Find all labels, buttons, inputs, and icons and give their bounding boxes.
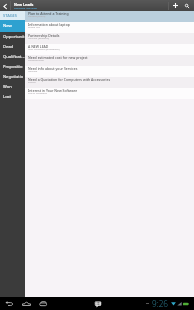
button[interactable]: Partnership Details bbox=[25, 33, 194, 44]
staticText: Need estimated cost for new project bbox=[28, 55, 88, 60]
staticText: Agrolait (Belgium) bbox=[28, 36, 50, 39]
staticText: Lost bbox=[3, 94, 12, 100]
staticText: Won bbox=[3, 84, 12, 90]
staticText: Information about laptop bbox=[28, 22, 70, 27]
button[interactable]: Add bbox=[169, 0, 181, 11]
staticText: The IT Company bbox=[28, 91, 48, 94]
staticText: Displaying New leads bbox=[14, 7, 37, 10]
staticText: Plan to Attend a Training bbox=[28, 11, 69, 16]
button[interactable]: Lost bbox=[0, 92, 25, 102]
button[interactable]: Dead bbox=[0, 42, 25, 52]
button[interactable]: Proposition bbox=[0, 62, 25, 72]
button[interactable]: Home bbox=[18, 297, 35, 310]
button[interactable]: Need estimated cost for new project bbox=[25, 55, 194, 66]
button[interactable]: Interest in Your New Software bbox=[25, 88, 194, 99]
button[interactable]: Need a Quotation for Computers with Acce… bbox=[25, 77, 194, 88]
staticText: Need a Quotation for Computers with Acce… bbox=[28, 77, 111, 82]
staticText: Negotiation bbox=[3, 74, 25, 80]
button[interactable]: Search bbox=[181, 0, 193, 11]
button[interactable]: Qualificat... bbox=[0, 52, 25, 62]
button[interactable]: Negotiation bbox=[0, 72, 25, 82]
staticText: STAGES bbox=[3, 13, 18, 18]
staticText: Interest in Your New Software bbox=[28, 88, 78, 93]
button[interactable]: A NEW LEAD bbox=[25, 44, 194, 55]
button[interactable]: Need info about your Services bbox=[25, 66, 194, 77]
staticText: Proposition bbox=[3, 64, 25, 70]
staticText: Shane Ltd bbox=[28, 25, 40, 28]
button[interactable]: Recent apps bbox=[35, 297, 52, 310]
staticText: Your Company (Bangalore) bbox=[28, 47, 60, 50]
button[interactable]: Plan to Attend a Training bbox=[25, 11, 194, 22]
staticText: New bbox=[3, 23, 12, 29]
button[interactable]: Won bbox=[0, 82, 25, 92]
staticText: Opportunity bbox=[3, 34, 25, 40]
staticText: Ecaros bbox=[28, 80, 36, 83]
staticText: Need info about your Services bbox=[28, 66, 78, 71]
staticText: Dead bbox=[3, 44, 14, 50]
staticText: Partnership Details bbox=[28, 33, 60, 38]
staticText: Agrolait bbox=[28, 69, 38, 72]
staticText: Qualificat... bbox=[3, 54, 25, 60]
button[interactable]: Keyboard bbox=[92, 298, 103, 309]
staticText: 9:26 bbox=[152, 298, 169, 309]
staticText: Camptocamp bbox=[28, 58, 44, 61]
staticText: New Leads bbox=[14, 2, 34, 7]
staticText: Deltapc (Delhi) bbox=[28, 14, 46, 17]
button[interactable]: New bbox=[0, 20, 25, 32]
button[interactable]: Opportunity bbox=[0, 32, 25, 42]
button[interactable]: Information about laptop bbox=[25, 22, 194, 33]
staticText: A NEW LEAD bbox=[28, 44, 49, 49]
button[interactable]: Back bbox=[0, 0, 10, 11]
button[interactable]: Back bbox=[1, 297, 18, 310]
